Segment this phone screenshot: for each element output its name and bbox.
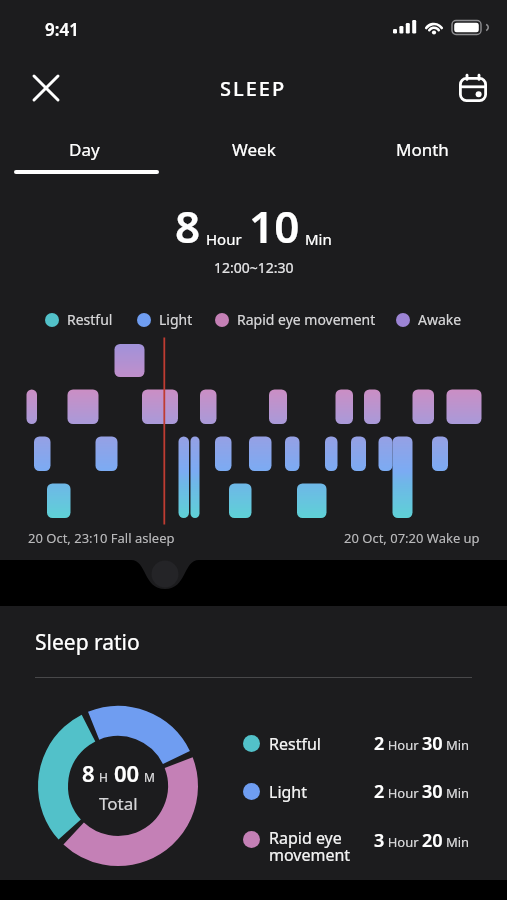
staticText: Total [99, 792, 138, 815]
button[interactable]: Week [169, 128, 338, 170]
staticText: Min [305, 229, 332, 249]
button[interactable] [145, 560, 185, 590]
staticText: Light [269, 781, 308, 803]
staticText: H [99, 769, 108, 785]
button[interactable]: Month [338, 128, 507, 170]
staticText: 20 Oct, 23:10 Fall asleep [28, 529, 175, 547]
staticText: 00 [114, 758, 140, 788]
staticText: Month [396, 138, 449, 161]
staticText: Day [69, 138, 100, 161]
staticText: Sleep ratio [35, 628, 140, 657]
staticText: 9:41 [45, 18, 79, 41]
staticText: Light [159, 310, 193, 329]
staticText: Restful [67, 310, 113, 329]
staticText: 20 Oct, 07:20 Wake up [344, 529, 480, 547]
button[interactable]: Day [0, 128, 169, 170]
staticText: 3 Hour 20 Min [374, 828, 470, 853]
staticText: 8 [175, 196, 201, 256]
staticText: 2 Hour 30 Min [374, 779, 470, 804]
staticText: M [144, 769, 155, 785]
staticText: 10 [249, 196, 300, 256]
staticText: Restful [269, 733, 321, 755]
staticText: 2 Hour 30 Min [374, 731, 470, 756]
staticText: Rapid eye movement [237, 310, 376, 329]
staticText: Hour [206, 229, 242, 249]
button[interactable] [453, 68, 493, 108]
staticText: 8 [82, 758, 95, 788]
staticText: 12:00~12:30 [214, 258, 294, 277]
button[interactable] [26, 68, 66, 108]
staticText: Week [232, 138, 276, 161]
staticText: SLEEP [220, 75, 287, 102]
staticText: Rapid eye movement [269, 827, 351, 866]
staticText: Awake [418, 310, 462, 329]
